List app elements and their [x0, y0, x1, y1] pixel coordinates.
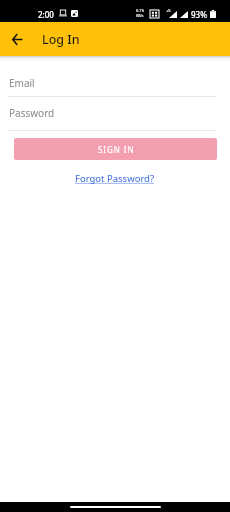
staticText: SIGN IN	[98, 144, 135, 155]
button[interactable]: SIGN IN	[14, 138, 217, 160]
staticText: Password	[9, 106, 55, 120]
button[interactable]: Forgot Password?	[73, 170, 157, 187]
staticText: KB/s	[136, 13, 144, 18]
staticText: Forgot Password?	[75, 172, 155, 185]
staticText: 0.76	[136, 8, 144, 13]
button[interactable]: Email	[8, 63, 216, 97]
staticText: 2:00	[38, 9, 54, 20]
staticText: +5	[166, 8, 171, 13]
button[interactable]: Back	[7, 29, 27, 49]
staticText: Email	[9, 76, 35, 90]
button[interactable]: Home	[70, 506, 161, 508]
button[interactable]: Password	[8, 97, 216, 131]
staticText: 93%	[191, 9, 207, 20]
staticText: Log In	[42, 31, 80, 48]
